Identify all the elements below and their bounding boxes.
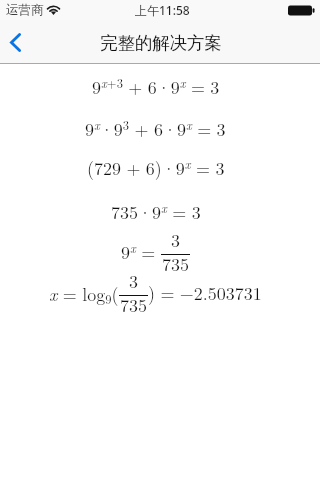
staticText: 9x·93 + 6·9x = 3 bbox=[85, 116, 226, 142]
staticText: (729 + 6)·9x = 3 bbox=[87, 155, 225, 181]
button[interactable]: Back bbox=[0, 20, 40, 64]
staticText: ) = −2.503731 bbox=[148, 280, 262, 306]
staticText: 735 bbox=[162, 251, 189, 277]
staticText: 运营商 bbox=[6, 2, 44, 18]
staticText: x = log9( bbox=[49, 281, 119, 308]
staticText: 9x+3 + 6·9x = 3 bbox=[92, 74, 220, 100]
staticText: 上午11:58 bbox=[135, 2, 190, 18]
staticText: 完整的解决方案 bbox=[100, 32, 222, 54]
staticText: 9x = bbox=[121, 239, 161, 265]
staticText: 735·9x = 3 bbox=[111, 199, 201, 225]
staticText: 3 bbox=[129, 268, 138, 294]
staticText: 3 bbox=[171, 227, 180, 253]
staticText: 735 bbox=[120, 292, 147, 318]
